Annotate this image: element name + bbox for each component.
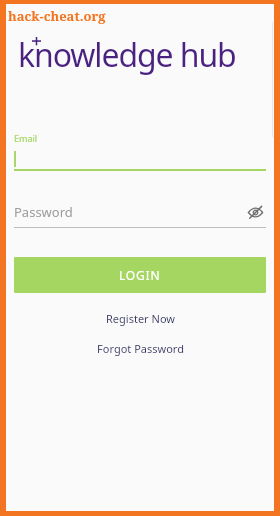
staticText: knowledge hub [18,33,236,77]
staticText: Email [14,132,38,144]
button[interactable]: Forgot Password [6,337,274,359]
button[interactable] [14,150,266,168]
staticText: LOGIN [119,267,161,283]
button[interactable]: Password [14,202,266,222]
staticText: Password [14,203,244,221]
button[interactable]: Show password [244,202,266,222]
button[interactable]: Register Now [6,307,274,329]
button[interactable]: LOGIN [14,257,266,293]
staticText: Forgot Password [97,341,184,356]
staticText: Register Now [106,311,175,326]
staticText: hack-cheat.org [8,7,106,25]
